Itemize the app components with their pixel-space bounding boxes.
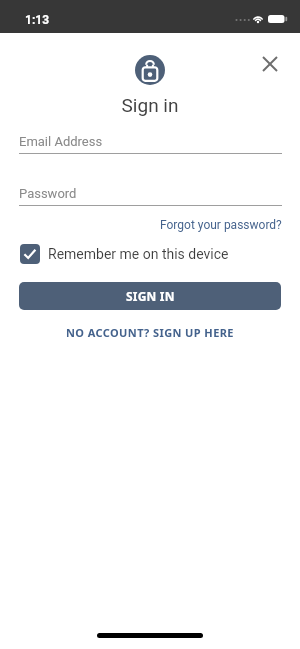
- staticText: Password: [19, 186, 77, 201]
- button[interactable]: Remember me on this device: [20, 244, 229, 264]
- staticText: Remember me on this device: [48, 246, 229, 262]
- button[interactable]: Forgot your password?: [160, 218, 282, 232]
- button[interactable]: [254, 48, 286, 80]
- button[interactable]: NO ACCOUNT? SIGN UP HERE: [66, 325, 234, 340]
- staticText: SIGN IN: [126, 288, 175, 304]
- staticText: Email Address: [19, 134, 103, 149]
- staticText: Sign in: [0, 94, 300, 116]
- staticText: 1:13: [25, 13, 50, 27]
- button[interactable]: SIGN IN: [19, 282, 281, 310]
